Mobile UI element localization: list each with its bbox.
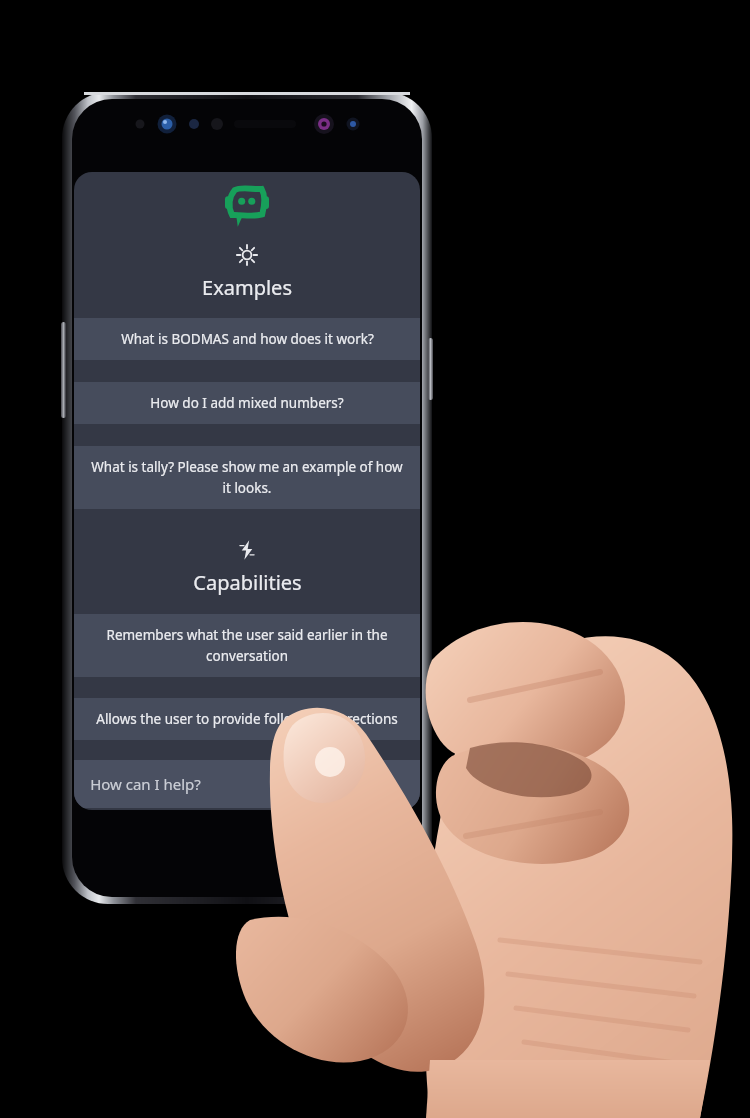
staticText: What is tally? Please show me an example…	[88, 458, 406, 497]
staticText: Capabilities	[193, 569, 302, 596]
button[interactable]: What is BODMAS and how does it work?	[74, 318, 420, 360]
staticText: What is BODMAS and how does it work?	[121, 330, 374, 348]
staticText: How do I add mixed numbers?	[150, 394, 344, 412]
staticText: Allows the user to provide follow-up cor…	[96, 710, 398, 728]
staticText: How can I help?	[90, 774, 201, 794]
button[interactable]: What is tally? Please show me an example…	[74, 446, 420, 509]
button[interactable]: How can I help?	[74, 760, 420, 808]
staticText: Remembers what the user said earlier in …	[88, 626, 406, 665]
button[interactable]: Remembers what the user said earlier in …	[74, 614, 420, 677]
button[interactable]: Allows the user to provide follow-up cor…	[74, 698, 420, 740]
button[interactable]: How do I add mixed numbers?	[74, 382, 420, 424]
other: Assistant logo	[219, 182, 275, 230]
staticText: Examples	[202, 274, 292, 301]
